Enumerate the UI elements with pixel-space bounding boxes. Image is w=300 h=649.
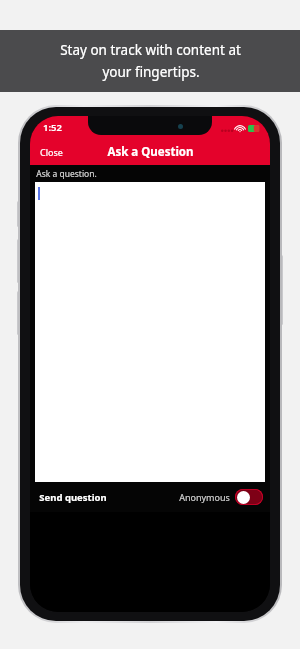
staticText: your fingertips. xyxy=(102,63,200,81)
button[interactable]: Anonymous toggle xyxy=(179,489,263,505)
button[interactable] xyxy=(35,182,265,482)
staticText: Anonymous xyxy=(179,491,230,503)
button[interactable]: Send question xyxy=(30,485,116,510)
staticText: Ask a question. xyxy=(36,168,97,180)
staticText: Ask a Question xyxy=(107,144,194,160)
staticText: Stay on track with content at xyxy=(60,41,241,59)
staticText: Close xyxy=(40,146,63,158)
button[interactable]: Close xyxy=(30,141,73,163)
staticText: 1:52 xyxy=(43,121,62,134)
staticText: Send question xyxy=(39,491,107,504)
